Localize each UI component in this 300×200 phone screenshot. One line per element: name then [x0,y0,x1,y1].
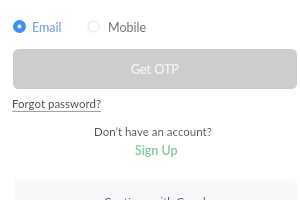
button[interactable]: Sign Up [133,143,180,158]
button[interactable]: Mobile [85,17,149,36]
button[interactable]: Get OTP [13,49,297,89]
button[interactable]: Forgot password? [12,97,102,111]
staticText: Continue with Google [104,195,212,200]
staticText: Email [32,20,62,35]
staticText: Sign Up [135,143,178,158]
staticText: Don’t have an account? [94,125,212,139]
staticText: Get OTP [131,62,179,77]
button[interactable]: Email [11,17,64,36]
staticText: Mobile [108,20,147,35]
staticText: Forgot password? [12,97,102,111]
button[interactable]: Continue with Google [14,182,297,200]
